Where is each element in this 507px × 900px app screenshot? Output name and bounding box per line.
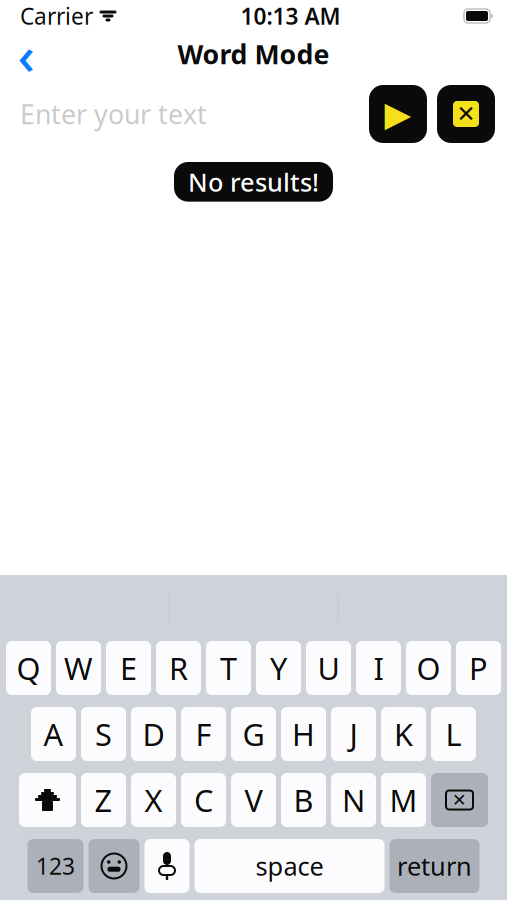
button[interactable]: I <box>356 641 401 695</box>
button[interactable]: P <box>456 641 501 695</box>
button[interactable]: N <box>331 773 376 827</box>
staticText: T <box>220 648 237 688</box>
button[interactable]: V <box>231 773 276 827</box>
button[interactable]: F <box>181 707 226 761</box>
button[interactable]: Dictate <box>144 839 189 893</box>
staticText: A <box>43 714 63 754</box>
button[interactable]: Q <box>6 641 51 695</box>
staticText: 10:13 AM <box>240 1 340 31</box>
staticText: F <box>195 714 211 754</box>
button[interactable]: Y <box>256 641 301 695</box>
staticText: C <box>194 780 213 820</box>
button[interactable]: D <box>131 707 176 761</box>
staticText: U <box>317 648 339 688</box>
button[interactable]: W <box>56 641 101 695</box>
button[interactable]: 123 <box>27 839 83 893</box>
staticText: No results! <box>188 165 319 199</box>
button[interactable]: K <box>381 707 426 761</box>
staticText: S <box>95 714 112 754</box>
staticText: O <box>416 648 440 688</box>
staticText: W <box>64 648 93 688</box>
staticText: Z <box>94 780 112 820</box>
staticText: D <box>142 714 164 754</box>
button[interactable]: R <box>156 641 201 695</box>
staticText: Carrier <box>20 1 93 31</box>
staticText: V <box>244 780 262 820</box>
button[interactable]: M <box>381 773 426 827</box>
button[interactable]: return <box>389 839 479 893</box>
staticText: Q <box>16 648 40 688</box>
staticText: N <box>342 780 365 820</box>
button[interactable]: space <box>194 839 384 893</box>
staticText: ✕ <box>456 101 475 127</box>
staticText: J <box>349 714 357 754</box>
button[interactable]: J <box>331 707 376 761</box>
staticText: ▶ <box>384 94 411 134</box>
staticText: I <box>373 648 383 688</box>
staticText: R <box>169 648 188 688</box>
button[interactable]: B <box>281 773 326 827</box>
staticText: Y <box>270 648 287 688</box>
button[interactable]: H <box>281 707 326 761</box>
button[interactable]: L <box>431 707 476 761</box>
button[interactable]: U <box>306 641 351 695</box>
button[interactable]: Z <box>81 773 126 827</box>
button[interactable]: C <box>181 773 226 827</box>
staticText: H <box>292 714 315 754</box>
staticText: E <box>120 648 137 688</box>
staticText: 123 <box>36 851 75 881</box>
staticText: M <box>389 780 417 820</box>
button[interactable]: Delete <box>431 773 488 827</box>
button[interactable]: E <box>106 641 151 695</box>
staticText: Word Mode <box>177 36 329 72</box>
staticText: ‹ <box>17 19 34 89</box>
staticText: Enter your text <box>20 96 207 132</box>
staticText: K <box>394 714 413 754</box>
staticText: ✕ <box>452 790 467 810</box>
staticText: X <box>144 780 162 820</box>
button[interactable]: G <box>231 707 276 761</box>
button[interactable]: Play <box>369 85 427 143</box>
staticText: P <box>469 648 488 688</box>
button[interactable]: Shift <box>19 773 76 827</box>
staticText: B <box>293 780 313 820</box>
button[interactable]: Back <box>4 32 48 76</box>
button[interactable]: Emoji <box>88 839 139 893</box>
button[interactable]: X <box>131 773 176 827</box>
button[interactable]: A <box>31 707 76 761</box>
staticText: L <box>445 714 461 754</box>
button[interactable]: O <box>406 641 451 695</box>
button[interactable]: Clear <box>437 85 495 143</box>
button[interactable]: S <box>81 707 126 761</box>
staticText: space <box>255 849 323 883</box>
staticText: return <box>397 849 472 883</box>
staticText: G <box>242 714 264 754</box>
button[interactable]: T <box>206 641 251 695</box>
